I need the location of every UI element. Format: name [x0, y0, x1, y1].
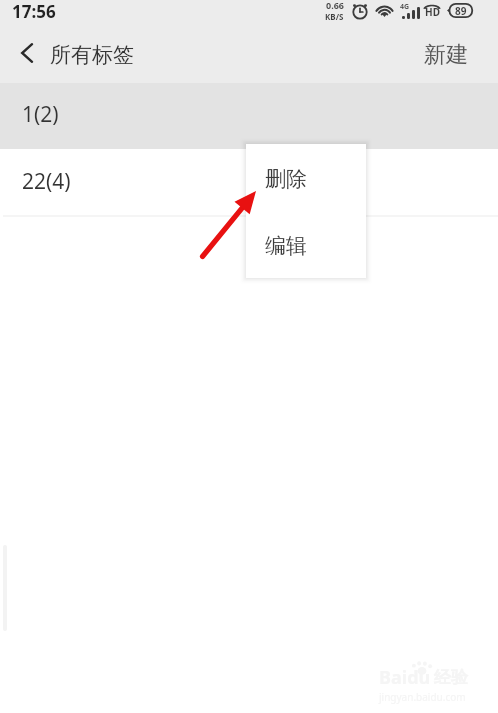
button[interactable]: 编辑 [246, 211, 366, 278]
staticText: 0.66 [326, 0, 344, 11]
staticText: Baidu [379, 665, 431, 690]
staticText: 22(4) [22, 167, 71, 196]
staticText: 编辑 [265, 233, 307, 259]
button[interactable]: 删除 [246, 144, 366, 211]
staticText: 89 [455, 4, 467, 18]
button[interactable]: 22(4) [0, 149, 498, 215]
button[interactable]: 新建 [406, 29, 498, 81]
staticText: 经验 [434, 667, 468, 688]
other: Back [21, 43, 33, 63]
staticText: KB/S [325, 11, 344, 22]
staticText: 1(2) [22, 100, 59, 129]
staticText: 新建 [424, 41, 468, 69]
staticText: 删除 [265, 166, 307, 192]
staticText: jingyan.baidu.com [379, 690, 466, 704]
button[interactable]: 1(2) [0, 83, 498, 149]
staticText: 所有标签 [50, 42, 134, 68]
staticText: 17:56 [12, 0, 56, 23]
button[interactable]: Back [0, 34, 146, 76]
staticText: 4G [400, 2, 410, 12]
staticText: HD [425, 5, 440, 19]
